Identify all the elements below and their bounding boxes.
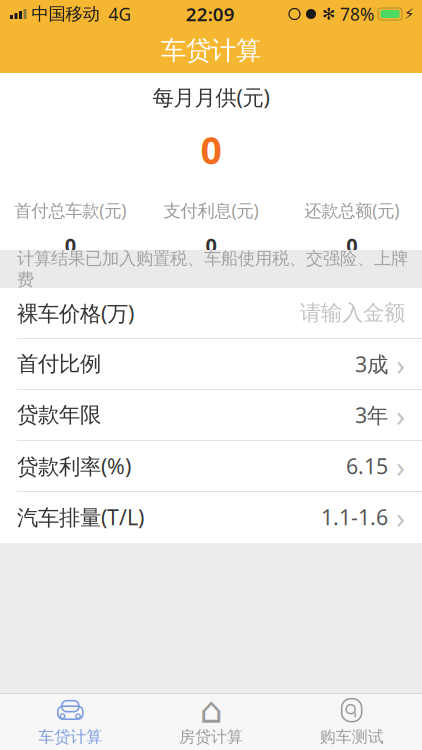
button[interactable]: 裸车价格(万) <box>0 288 422 339</box>
staticText: 78% <box>340 2 374 25</box>
staticText: ⌂ <box>199 690 222 731</box>
staticText: 每月月供(元) <box>152 83 269 111</box>
staticText: 22:09 <box>186 2 235 26</box>
staticText: 支付利息(元) <box>163 199 258 222</box>
button[interactable]: 首付比例 <box>0 339 422 390</box>
staticText: 购车测试 <box>320 727 384 747</box>
staticText: 首付比例 <box>17 351 101 377</box>
button[interactable]: 汽车排量(T/L) <box>0 492 422 543</box>
staticText: 车贷计算 <box>161 35 261 66</box>
staticText: 0 <box>200 125 221 175</box>
staticText: 请输入金额 <box>300 300 405 326</box>
staticText: 0 <box>205 232 216 258</box>
button[interactable]: 贷款年限 <box>0 390 422 441</box>
staticText: 3成 <box>355 350 388 378</box>
staticText: 房贷计算 <box>179 727 243 747</box>
button[interactable]: 贷款利率(%) <box>0 441 422 492</box>
staticText: 贷款年限 <box>17 402 101 428</box>
staticText: 0 <box>346 232 357 258</box>
staticText: 1.1-1.6 <box>321 503 388 531</box>
staticText: 车贷计算 <box>38 727 102 747</box>
staticText: 中国移动 <box>31 3 99 25</box>
staticText: › <box>396 395 405 434</box>
staticText: 贷款利率(%) <box>17 452 131 480</box>
staticText: › <box>396 344 405 383</box>
staticText: 4G <box>108 2 131 25</box>
staticText: ✻ <box>322 5 335 23</box>
staticText: 首付总车款(元) <box>14 199 126 222</box>
button[interactable]: 购车测试 <box>281 694 422 750</box>
staticText: 3年 <box>355 401 388 429</box>
staticText: 汽车排量(T/L) <box>17 503 144 531</box>
staticText: 裸车价格(万) <box>17 299 134 327</box>
staticText: › <box>396 446 405 485</box>
staticText: ⚡︎ <box>404 6 414 22</box>
button[interactable]: 车贷计算 <box>0 694 141 750</box>
staticText: 6.15 <box>346 452 388 480</box>
staticText: 计算结果已加入购置税、车船使用税、交强险、上牌费 <box>17 248 408 290</box>
staticText: 还款总额(元) <box>304 199 399 222</box>
button[interactable]: ⌂ <box>141 694 281 750</box>
staticText: › <box>396 497 405 536</box>
staticText: 0 <box>65 232 76 258</box>
